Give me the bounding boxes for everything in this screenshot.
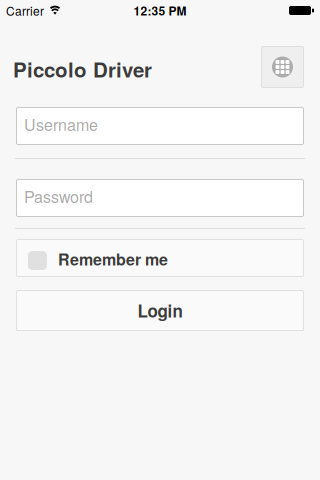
button[interactable]: Remember me	[16, 239, 304, 277]
button[interactable]: Login	[16, 290, 304, 331]
staticText: Carrier	[6, 2, 44, 19]
staticText: Remember me	[58, 247, 168, 270]
button[interactable]: Language	[261, 46, 304, 88]
staticText: 12:35 PM	[133, 2, 186, 19]
staticText: Username	[24, 112, 98, 135]
button[interactable]: Username	[16, 107, 304, 145]
staticText: Password	[24, 184, 93, 207]
staticText: Piccolo Driver	[13, 54, 152, 84]
button[interactable]: Password	[16, 179, 304, 217]
staticText: Login	[137, 298, 182, 323]
